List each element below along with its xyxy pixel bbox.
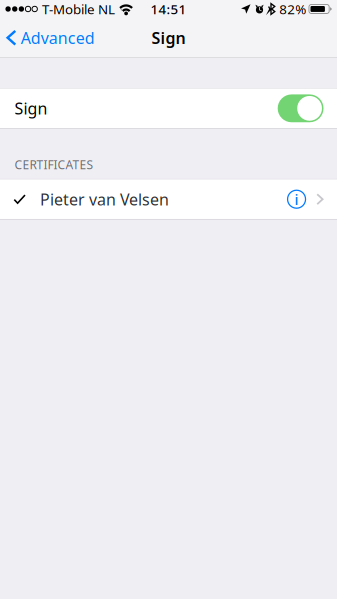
staticText: i	[295, 189, 299, 209]
button[interactable]: Sign	[278, 94, 323, 122]
staticText: T-Mobile NL	[42, 0, 115, 18]
button[interactable]: Pieter van Velsen	[0, 179, 337, 219]
staticText: Pieter van Velsen	[40, 189, 169, 210]
staticText: CERTIFICATES	[14, 157, 93, 173]
staticText: Sign	[151, 27, 185, 48]
staticText: 14:51	[150, 0, 186, 18]
staticText: Advanced	[21, 27, 95, 48]
button[interactable]: Advanced	[0, 19, 104, 57]
staticText: Sign	[14, 98, 47, 119]
staticText: 82%	[279, 0, 306, 18]
